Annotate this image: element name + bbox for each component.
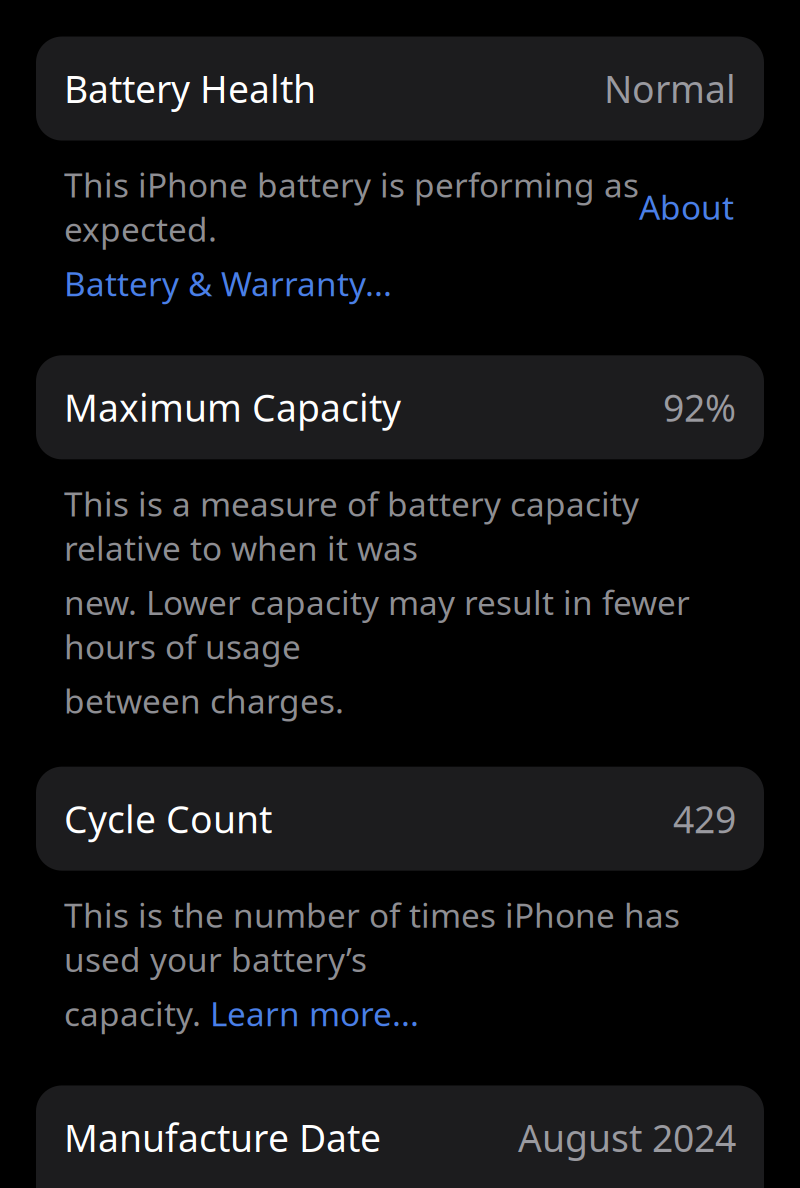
staticText: Cycle Count — [64, 794, 272, 843]
staticText: This iPhone battery is performing as exp… — [64, 162, 639, 251]
button[interactable]: Battery Health — [36, 36, 764, 140]
button[interactable]: Manufacture Date — [36, 1085, 764, 1188]
staticText: Learn more... — [210, 991, 419, 1035]
staticText: This is the number of times iPhone has u… — [64, 893, 680, 981]
staticText: August 2024 — [518, 1113, 736, 1162]
staticText: This is a measure of battery capacity re… — [64, 481, 639, 570]
staticText: Battery & Warranty... — [64, 261, 392, 305]
staticText: 92% — [663, 382, 736, 432]
staticText: About — [639, 185, 734, 229]
button[interactable]: Battery & Warranty... — [64, 261, 392, 305]
button[interactable]: Maximum Capacity — [36, 355, 764, 459]
button[interactable]: About — [639, 185, 734, 229]
staticText: new. Lower capacity may result in fewer … — [64, 580, 690, 668]
staticText: Maximum Capacity — [64, 382, 401, 432]
button[interactable]: Learn more... — [210, 991, 419, 1035]
staticText: between charges. — [64, 678, 344, 723]
staticText: Manufacture Date — [64, 1113, 381, 1162]
button[interactable]: Cycle Count — [36, 767, 764, 871]
staticText: 429 — [673, 794, 736, 843]
staticText: Battery Health — [64, 64, 316, 113]
staticText: Normal — [604, 64, 736, 113]
staticText: capacity. — [64, 991, 210, 1035]
